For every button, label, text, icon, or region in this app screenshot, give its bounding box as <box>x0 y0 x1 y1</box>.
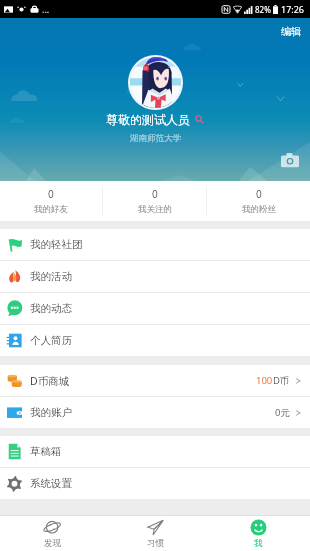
button[interactable]: 草稿箱 <box>0 436 310 467</box>
button[interactable]: 我的动态 <box>0 293 310 324</box>
button[interactable]: D币商城 <box>0 365 310 396</box>
staticText: 0 <box>152 187 158 201</box>
staticText: 我的好友 <box>34 204 68 215</box>
staticText: 我 <box>254 538 263 549</box>
staticText: 尊敬的测试人员 <box>106 112 190 127</box>
button[interactable]: 我的账户 <box>0 397 310 428</box>
staticText: 17:26 <box>281 3 305 15</box>
button[interactable]: 个人简历 <box>0 325 310 356</box>
staticText: 0元 <box>275 406 290 419</box>
button[interactable]: 我 <box>207 516 310 551</box>
staticText: 82% <box>255 4 271 15</box>
staticText: D币 <box>273 374 290 387</box>
staticText: 湖南师范大学 <box>130 133 181 144</box>
staticText: 我关注的 <box>138 204 172 215</box>
staticText: 系统设置 <box>30 477 72 490</box>
staticText: 编辑 <box>281 25 301 38</box>
button[interactable]: Profile photo <box>130 57 181 108</box>
staticText: 个人简历 <box>30 334 72 347</box>
button[interactable]: 0 <box>0 181 102 221</box>
staticText: 习惯 <box>147 538 164 549</box>
button[interactable]: 发现 <box>0 516 104 551</box>
button[interactable]: 编辑 <box>277 22 305 41</box>
button[interactable]: 0 <box>103 181 206 221</box>
staticText: 0 <box>48 187 54 201</box>
button[interactable]: Change cover photo <box>281 152 299 168</box>
staticText: 发现 <box>44 538 61 549</box>
staticText: 我的账户 <box>30 406 72 419</box>
button[interactable]: 系统设置 <box>0 468 310 499</box>
staticText: 我的粉丝 <box>242 204 276 215</box>
button[interactable]: 0 <box>207 181 310 221</box>
staticText: 我的动态 <box>30 302 72 315</box>
staticText: ... <box>42 3 50 15</box>
button[interactable]: 我的活动 <box>0 261 310 292</box>
staticText: 0 <box>256 187 262 201</box>
staticText: 我的活动 <box>30 270 72 283</box>
staticText: D币商城 <box>30 374 70 388</box>
button[interactable]: 习惯 <box>104 516 207 551</box>
staticText: 草稿箱 <box>30 445 62 458</box>
staticText: 我的轻社团 <box>30 238 83 251</box>
staticText: 100 <box>256 374 273 387</box>
button[interactable]: 我的轻社团 <box>0 229 310 260</box>
